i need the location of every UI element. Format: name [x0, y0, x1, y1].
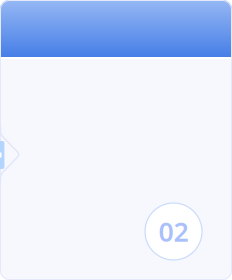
staticText: 02 — [158, 214, 188, 249]
button[interactable]: Previous page — [0, 141, 4, 169]
button[interactable]: Step 2 — [145, 203, 202, 260]
